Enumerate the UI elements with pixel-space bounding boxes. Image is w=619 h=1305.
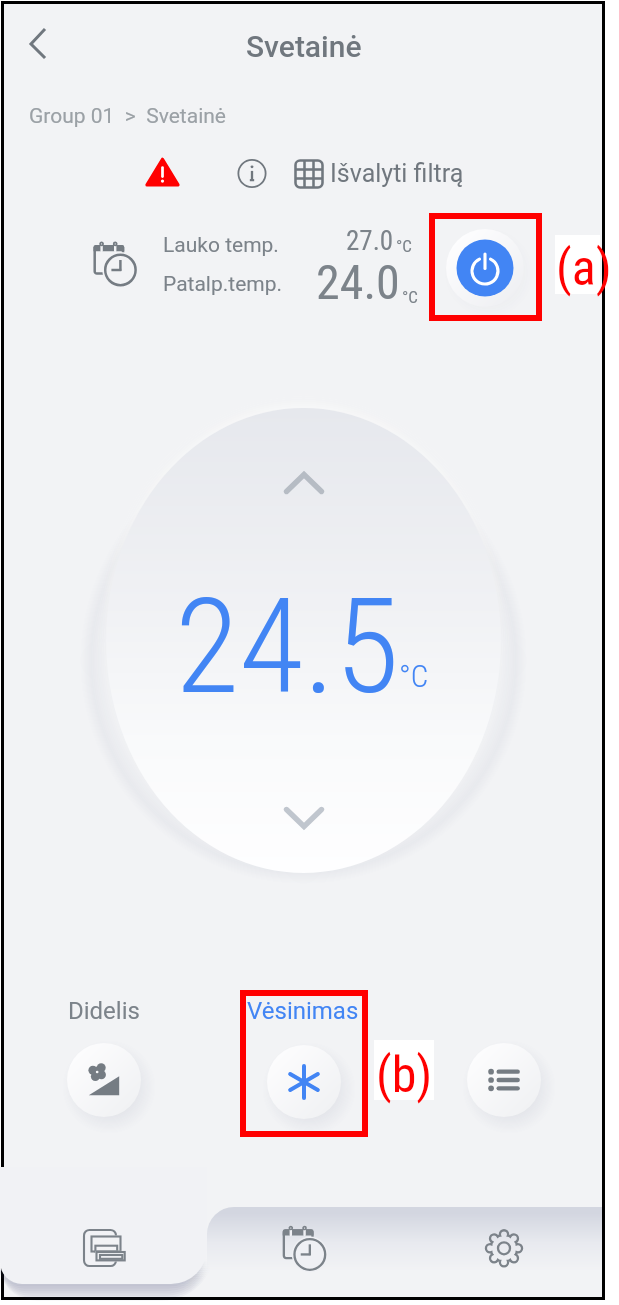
staticText: (b) [376, 1046, 433, 1105]
staticText: 27.0 [346, 225, 394, 257]
staticText: Svetainė [246, 29, 362, 64]
staticText: Group 01 > Svetainė [29, 104, 226, 129]
staticText: Lauko temp. [163, 233, 279, 258]
button[interactable]: Power [439, 222, 531, 314]
staticText: °C [396, 236, 412, 256]
button[interactable]: Increase temperature [281, 465, 327, 511]
button[interactable]: Warning [138, 150, 184, 196]
staticText: Patalp.temp. [163, 272, 283, 297]
staticText: 24.5 [175, 570, 400, 725]
button[interactable]: Settings [480, 1223, 530, 1273]
button[interactable]: Indoor units [76, 1222, 126, 1272]
button[interactable]: Back [14, 21, 60, 67]
staticText: Vėsinimas [247, 997, 359, 1025]
staticText: °C [402, 287, 418, 307]
button[interactable]: Schedule [263, 1206, 313, 1256]
button[interactable]: Išvalyti filtrą [294, 159, 464, 189]
button[interactable]: Decrease temperature [281, 798, 327, 844]
staticText: Išvalyti filtrą [330, 159, 464, 188]
staticText: °C [399, 658, 429, 694]
button[interactable]: Operation mode [256, 1034, 352, 1130]
button[interactable]: Fan speed [56, 1032, 152, 1128]
staticText: Didelis [68, 997, 140, 1025]
button[interactable]: Information [229, 150, 275, 196]
staticText: (a) [556, 239, 612, 298]
button[interactable]: More options [456, 1032, 552, 1128]
staticText: 24.0 [316, 254, 400, 310]
